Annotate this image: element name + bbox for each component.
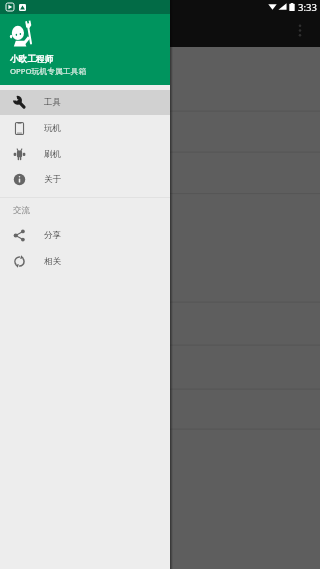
button[interactable]: 玩机 [0, 116, 170, 141]
button[interactable]: More options [290, 20, 310, 40]
staticText: OPPO玩机专属工具箱 [10, 66, 87, 77]
staticText: 刷机 [44, 149, 61, 160]
staticText: 玩机 [44, 123, 61, 134]
staticText: 分享 [44, 230, 61, 241]
staticText: 交流 [13, 205, 30, 216]
button[interactable]: 分享 [0, 223, 170, 248]
staticText: 工具 [44, 97, 61, 108]
button[interactable]: 关于 [0, 167, 170, 192]
staticText: 关于 [44, 174, 61, 185]
button[interactable]: 相关 [0, 249, 170, 274]
button[interactable]: 工具 [0, 90, 170, 115]
staticText: 3:33 [298, 1, 317, 14]
staticText: 相关 [44, 256, 61, 267]
staticText: 小欧工程师 [10, 54, 53, 65]
button[interactable]: 刷机 [0, 142, 170, 167]
